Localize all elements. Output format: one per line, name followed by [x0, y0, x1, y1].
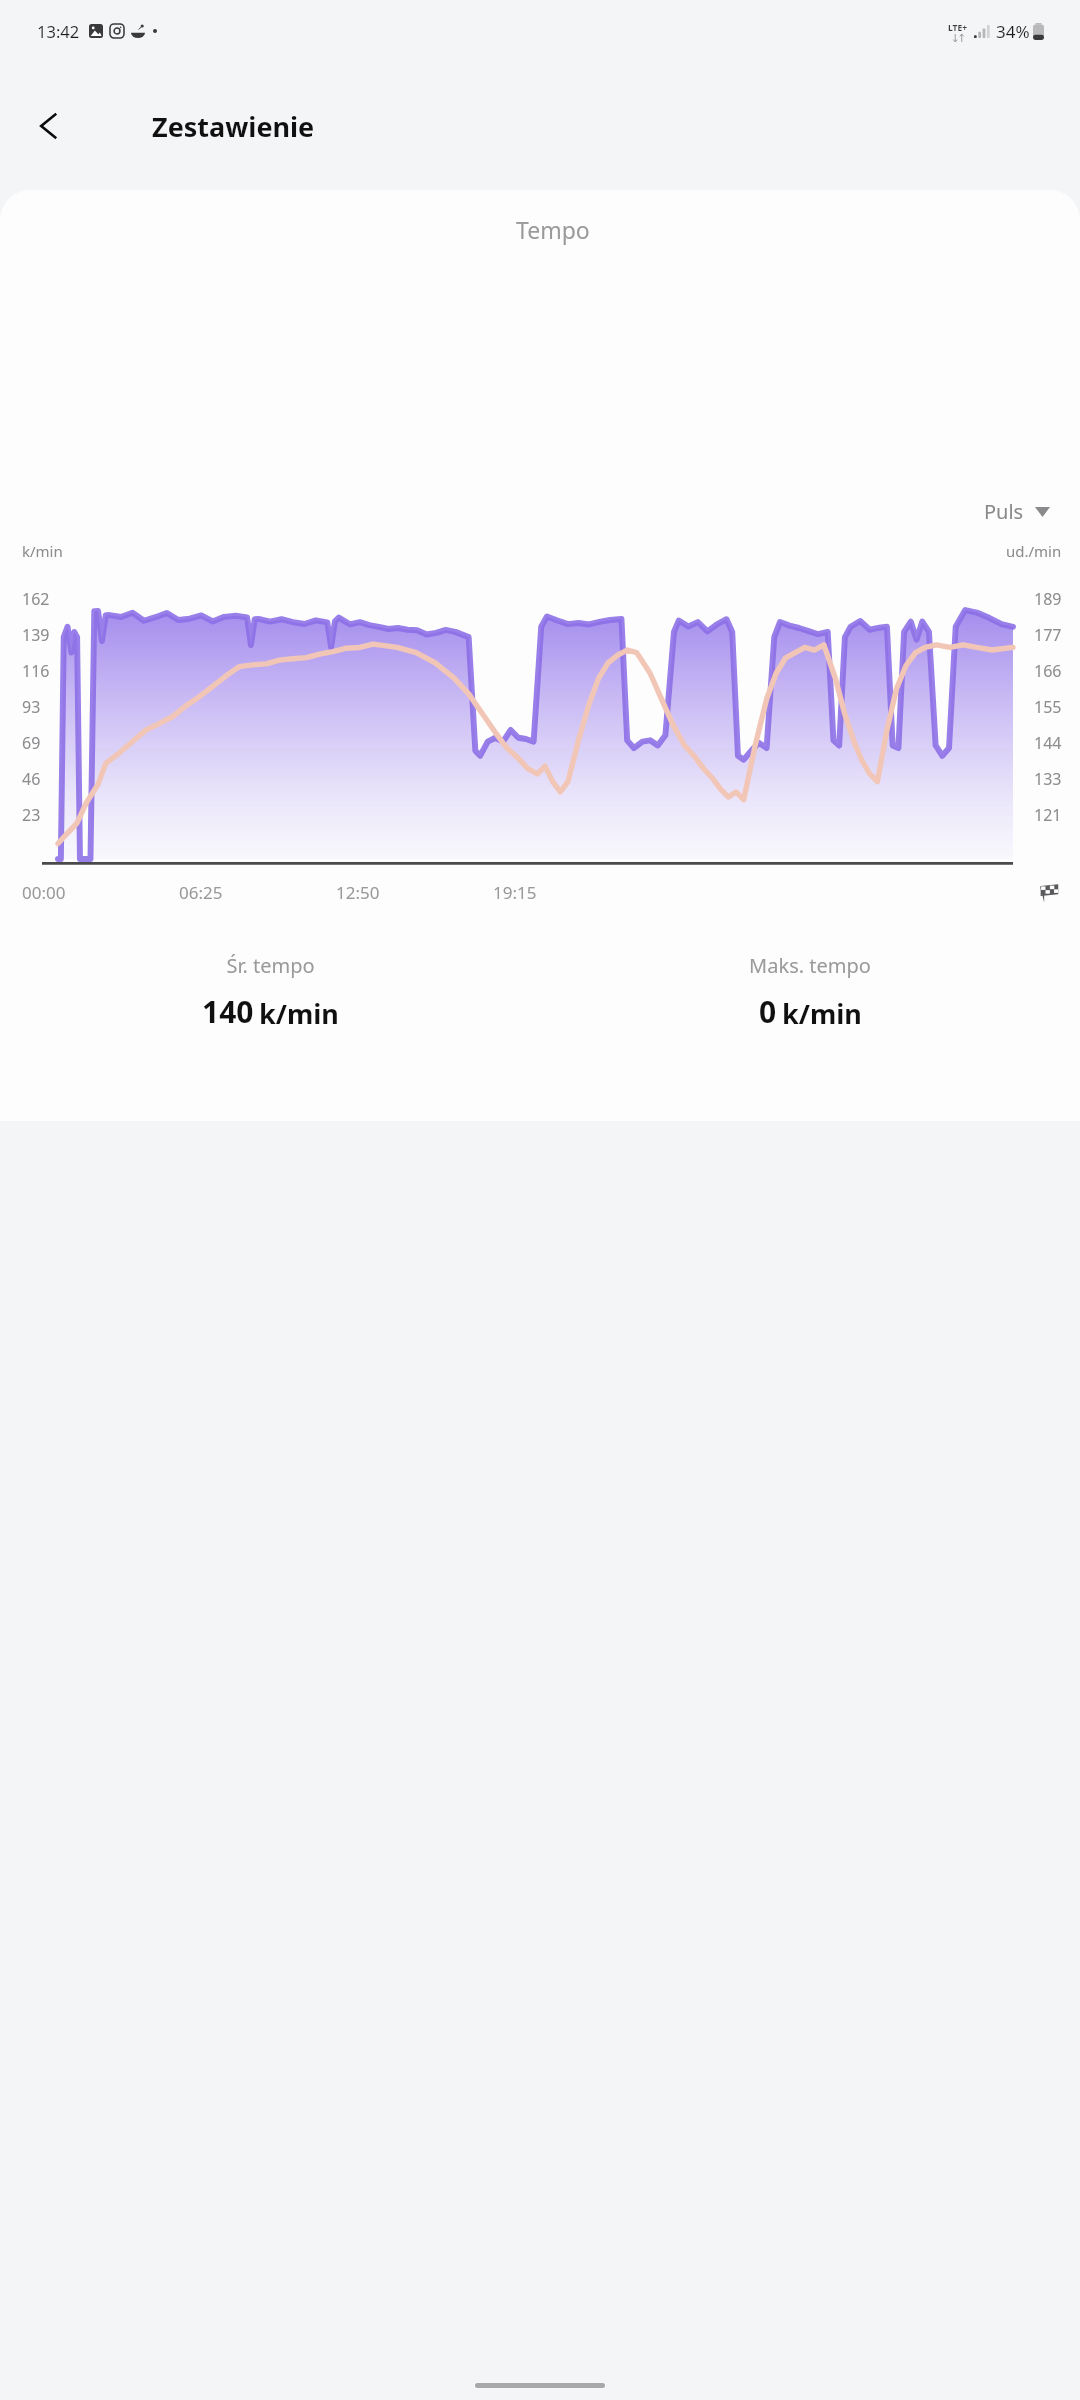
- staticText: 177: [1034, 624, 1062, 646]
- staticText: ud./min: [1006, 541, 1062, 561]
- staticText: Maks. tempo: [749, 952, 871, 979]
- staticText: 121: [1034, 804, 1062, 826]
- staticText: Zestawienie: [152, 108, 315, 145]
- staticText: 140: [202, 991, 254, 1032]
- staticText: 34%: [996, 20, 1030, 43]
- button[interactable]: Śr. tempo: [0, 948, 540, 1036]
- staticText: 116: [22, 660, 50, 682]
- button[interactable]: Tempo: [25, 212, 1080, 257]
- staticText: 12:50: [336, 881, 380, 904]
- staticText: 69: [22, 732, 41, 754]
- staticText: 133: [1034, 768, 1062, 790]
- button[interactable]: Puls: [978, 494, 1056, 529]
- staticText: 46: [22, 768, 41, 790]
- staticText: 13:42: [37, 20, 80, 42]
- staticText: 189: [1034, 588, 1062, 610]
- staticText: k/min: [259, 995, 339, 1032]
- button[interactable]: Back: [21, 98, 77, 154]
- staticText: k/min: [22, 541, 63, 561]
- staticText: 19:15: [493, 881, 537, 904]
- staticText: 162: [22, 588, 50, 610]
- staticText: 0: [759, 991, 777, 1032]
- button[interactable]: Maks. tempo: [540, 948, 1080, 1036]
- button[interactable]: Finish: [1038, 882, 1060, 904]
- staticText: 23: [22, 804, 41, 826]
- staticText: 166: [1034, 660, 1062, 682]
- staticText: Tempo: [516, 214, 590, 245]
- staticText: 00:00: [22, 881, 66, 904]
- staticText: 139: [22, 624, 50, 646]
- staticText: 155: [1034, 696, 1062, 718]
- staticText: Śr. tempo: [226, 952, 315, 979]
- staticText: 93: [22, 696, 41, 718]
- staticText: 06:25: [179, 881, 223, 904]
- staticText: k/min: [782, 995, 862, 1032]
- staticText: Puls: [984, 498, 1024, 525]
- staticText: LTE+: [948, 22, 968, 34]
- staticText: 144: [1034, 732, 1062, 754]
